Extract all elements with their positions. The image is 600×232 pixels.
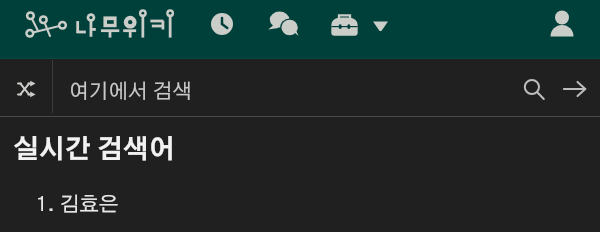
button[interactable]: Tools menu — [331, 1, 388, 49]
button[interactable]: Random page — [0, 59, 53, 117]
staticText: 실시간 검색어 — [13, 137, 175, 163]
button[interactable]: Go — [553, 59, 597, 117]
button[interactable] — [24, 0, 180, 48]
button[interactable]: Account — [543, 0, 581, 48]
button[interactable]: Recent changes — [204, 0, 240, 48]
button[interactable]: Search — [512, 59, 556, 117]
button[interactable]: Discussion — [266, 0, 302, 48]
button[interactable]: 1. 김효은 — [36, 195, 119, 216]
staticText: 여기에서 검색 — [69, 82, 193, 103]
